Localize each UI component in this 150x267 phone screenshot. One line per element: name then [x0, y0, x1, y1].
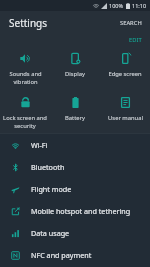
staticText: EDIT [129, 36, 142, 43]
button[interactable]: User manual [100, 89, 150, 133]
staticText: 100% [109, 2, 124, 9]
button[interactable]: SEARCH [112, 14, 150, 32]
button[interactable]: Mobile hotspot and tethering [0, 200, 150, 222]
staticText: Battery [65, 114, 85, 122]
staticText: Bluetooth [31, 162, 65, 172]
button[interactable]: Display [50, 45, 100, 89]
button[interactable]: Battery [50, 89, 100, 133]
staticText: Wi-Fi [31, 140, 48, 150]
staticText: Sounds and vibration [9, 70, 42, 86]
staticText: Mobile hotspot and tethering [31, 206, 131, 216]
button[interactable]: Wi-Fi [0, 134, 150, 156]
button[interactable]: Flight mode [0, 178, 150, 200]
button[interactable]: NFC and payment [0, 244, 150, 266]
button[interactable]: Edge screen [100, 45, 150, 89]
staticText: Flight mode [31, 184, 72, 194]
staticText: Edge screen [108, 70, 142, 78]
staticText: NFC and payment [31, 250, 92, 260]
button[interactable]: Bluetooth [0, 156, 150, 178]
staticText: Settings [9, 16, 48, 30]
staticText: Data usage [31, 228, 70, 238]
staticText: SEARCH [120, 19, 142, 27]
button[interactable]: Sounds and vibration [0, 45, 50, 89]
button[interactable]: Lock screen and security [0, 89, 50, 133]
staticText: Lock screen and security [3, 114, 47, 130]
staticText: Display [65, 70, 85, 78]
staticText: User manual [108, 114, 143, 122]
button[interactable]: Data usage [0, 222, 150, 244]
staticText: 11:10 [132, 2, 147, 9]
button[interactable]: EDIT [121, 34, 150, 45]
